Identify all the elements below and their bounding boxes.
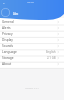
other: Open Storage [57,57,59,59]
other: Open Display [57,39,59,41]
staticText: General [2,20,14,24]
staticText: Display [2,38,13,42]
button[interactable]: Display [0,37,64,43]
other: Open Alerts [57,27,59,29]
staticText: 9 [3,1,5,4]
staticText: Storage [2,56,14,60]
staticText: English [46,50,56,54]
button[interactable]: Profile photo [1,8,10,17]
button[interactable]: Language [0,49,64,55]
button[interactable]: Storage [0,55,64,61]
other: Open Privacy [57,33,59,35]
staticText: Version 2.4.1 [25,87,39,90]
staticText: Language [2,50,17,54]
other: Open Language [57,51,59,53]
staticText: Privacy [2,32,13,36]
staticText: LTE 4G [27,1,34,4]
button[interactable]: Alerts [0,25,64,31]
staticText: About [2,62,12,66]
other: Open Sounds [57,45,59,47]
other: Open General [57,21,59,23]
staticText: Sounds [2,44,14,48]
other: Open About [57,63,59,65]
staticText: Alerts [2,26,11,30]
staticText: 2.1 GB [47,56,56,60]
button[interactable]: About [0,61,64,67]
button[interactable]: Sounds [0,43,64,49]
button[interactable]: General [0,19,64,25]
button[interactable]: Privacy [0,31,64,37]
staticText: Alex [13,12,19,16]
